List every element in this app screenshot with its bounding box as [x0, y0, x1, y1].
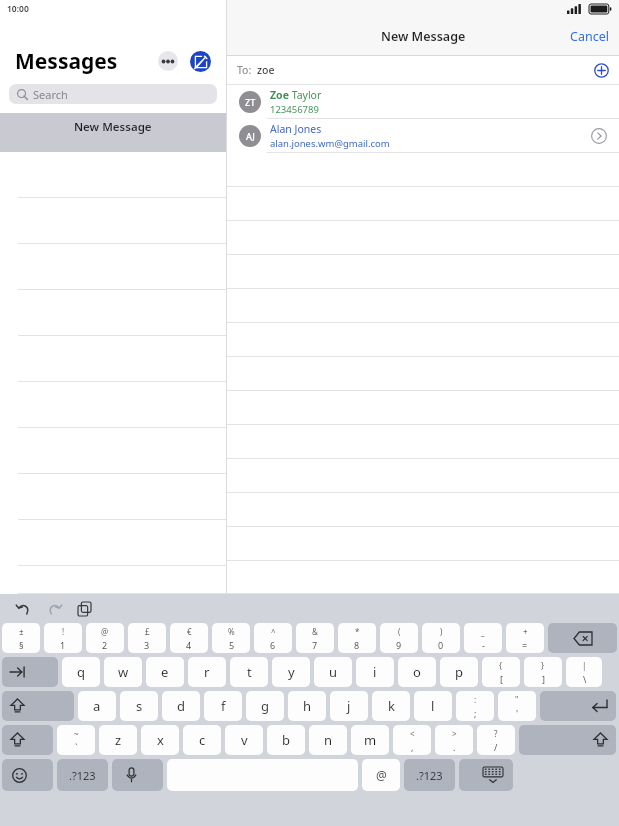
button[interactable]: u — [314, 657, 352, 687]
button[interactable]: z — [99, 725, 137, 755]
button[interactable]: x — [141, 725, 179, 755]
button[interactable] — [0, 244, 226, 290]
button[interactable]: ^ — [254, 623, 292, 653]
button[interactable]: New message — [190, 51, 211, 72]
staticText: 9 — [396, 639, 402, 651]
button[interactable] — [2, 725, 53, 755]
button[interactable]: w — [104, 657, 142, 687]
button[interactable] — [0, 474, 226, 520]
button[interactable]: r — [188, 657, 226, 687]
button[interactable]: ! — [44, 623, 82, 653]
button[interactable] — [2, 657, 58, 687]
staticText: 3 — [144, 639, 150, 651]
button[interactable]: Hide keyboard — [459, 759, 513, 791]
button[interactable]: + — [506, 623, 544, 653]
button[interactable]: .?123 — [404, 759, 455, 791]
button[interactable]: < — [393, 725, 431, 755]
button[interactable] — [519, 725, 616, 755]
button[interactable]: Cancel — [560, 22, 619, 51]
button[interactable]: s — [120, 691, 158, 721]
button[interactable]: " — [498, 691, 536, 721]
button[interactable]: ZT — [227, 85, 619, 119]
button[interactable]: j — [330, 691, 368, 721]
button[interactable]: n — [309, 725, 347, 755]
button[interactable]: o — [398, 657, 436, 687]
staticText: 4 — [186, 639, 192, 651]
staticText: - — [482, 639, 485, 651]
button[interactable]: f — [204, 691, 242, 721]
button[interactable] — [0, 382, 226, 428]
button[interactable]: Search — [9, 84, 217, 104]
button[interactable]: | — [566, 657, 602, 687]
staticText: @ — [101, 626, 109, 637]
button[interactable]: } — [524, 657, 562, 687]
button[interactable]: € — [170, 623, 208, 653]
button[interactable]: .?123 — [57, 759, 108, 791]
button[interactable]: * — [338, 623, 376, 653]
other: Hide keyboard — [483, 767, 503, 783]
button[interactable]: { — [482, 657, 520, 687]
button[interactable]: Contact details — [591, 128, 607, 144]
staticText: ( — [398, 626, 401, 637]
staticText: f — [221, 697, 226, 715]
button[interactable]: e — [146, 657, 184, 687]
button[interactable]: More options — [158, 51, 178, 71]
button[interactable]: v — [225, 725, 263, 755]
staticText: w — [118, 663, 129, 681]
button[interactable] — [0, 566, 226, 594]
button[interactable]: % — [212, 623, 250, 653]
staticText: { — [499, 660, 503, 671]
button[interactable] — [0, 290, 226, 336]
button[interactable]: > — [435, 725, 473, 755]
button[interactable]: £ — [128, 623, 166, 653]
button[interactable]: c — [183, 725, 221, 755]
button[interactable] — [548, 623, 617, 653]
button[interactable]: i — [356, 657, 394, 687]
staticText: 5 — [229, 639, 235, 651]
button[interactable]: Paste — [74, 598, 95, 620]
staticText: l — [431, 697, 435, 715]
button[interactable] — [2, 759, 53, 791]
staticText: d — [177, 697, 185, 715]
button[interactable]: m — [351, 725, 389, 755]
button[interactable]: @ — [86, 623, 124, 653]
button[interactable] — [540, 691, 616, 721]
button[interactable]: @ — [362, 759, 400, 791]
button[interactable] — [0, 336, 226, 382]
button[interactable]: t — [230, 657, 268, 687]
button[interactable]: ( — [380, 623, 418, 653]
staticText: u — [329, 663, 338, 681]
button[interactable]: y — [272, 657, 310, 687]
button[interactable]: a — [78, 691, 116, 721]
button[interactable]: _ — [464, 623, 502, 653]
button[interactable]: q — [62, 657, 100, 687]
staticText: z — [115, 731, 122, 749]
button[interactable]: Redo — [43, 599, 66, 619]
button[interactable]: h — [288, 691, 326, 721]
button[interactable]: d — [162, 691, 200, 721]
button[interactable]: ? — [477, 725, 515, 755]
button[interactable]: ~ — [57, 725, 95, 755]
button[interactable] — [2, 691, 74, 721]
button[interactable]: ± — [2, 623, 40, 653]
button[interactable]: g — [246, 691, 284, 721]
button[interactable]: New Message — [0, 113, 226, 152]
button[interactable] — [0, 198, 226, 244]
button[interactable] — [112, 759, 163, 791]
button[interactable]: b — [267, 725, 305, 755]
button[interactable] — [0, 520, 226, 566]
staticText: < — [410, 728, 415, 739]
button[interactable]: ) — [422, 623, 460, 653]
button[interactable]: Add contact — [594, 63, 609, 78]
button[interactable]: p — [440, 657, 478, 687]
button[interactable]: AJ — [227, 119, 619, 153]
button[interactable]: & — [296, 623, 334, 653]
button[interactable]: k — [372, 691, 410, 721]
button[interactable] — [0, 428, 226, 474]
button[interactable] — [0, 152, 226, 198]
button[interactable]: l — [414, 691, 452, 721]
button[interactable]: Undo — [12, 599, 35, 619]
staticText: ? — [494, 728, 498, 739]
button[interactable]: : — [456, 691, 494, 721]
